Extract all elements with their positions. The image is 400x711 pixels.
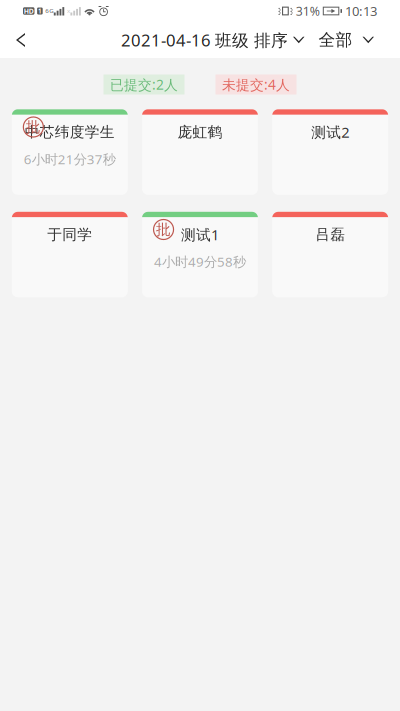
button[interactable]: 中芯纬度学生: [12, 109, 128, 195]
staticText: 已提交:2人: [110, 75, 178, 94]
staticText: x: [67, 6, 70, 15]
button[interactable]: 于同学: [12, 212, 128, 297]
button[interactable]: 2021-04-16 班级 排序: [121, 22, 304, 58]
staticText: 中芯纬度学生: [25, 123, 115, 141]
staticText: 10:13: [345, 2, 377, 20]
button[interactable]: 测试1: [142, 212, 258, 297]
staticText: 测试1: [181, 224, 219, 244]
button[interactable]: 返回: [0, 22, 41, 58]
button[interactable]: 吕磊: [272, 212, 388, 297]
staticText: HD: [24, 6, 34, 16]
staticText: 未提交:4人: [222, 75, 290, 94]
staticText: 2021-04-16 班级 排序: [121, 29, 288, 51]
staticText: 6G: [45, 6, 53, 15]
staticText: 批: [156, 220, 171, 239]
staticText: 测试2: [311, 122, 349, 142]
staticText: 批: [26, 118, 41, 136]
button[interactable]: 庞虹鹤: [142, 109, 258, 195]
staticText: 于同学: [47, 225, 92, 244]
staticText: 4小时49分58秒: [154, 252, 246, 271]
staticText: 吕磊: [315, 225, 345, 244]
button[interactable]: 测试2: [272, 109, 388, 195]
button[interactable]: 未提交:4人: [215, 74, 296, 94]
button[interactable]: 全部: [318, 22, 374, 58]
staticText: 31%: [296, 3, 320, 19]
button[interactable]: 已提交:2人: [103, 74, 184, 94]
staticText: 全部: [318, 29, 352, 50]
staticText: 6小时21分37秒: [24, 150, 116, 168]
staticText: 1: [38, 7, 42, 15]
staticText: 庞虹鹤: [177, 123, 222, 141]
